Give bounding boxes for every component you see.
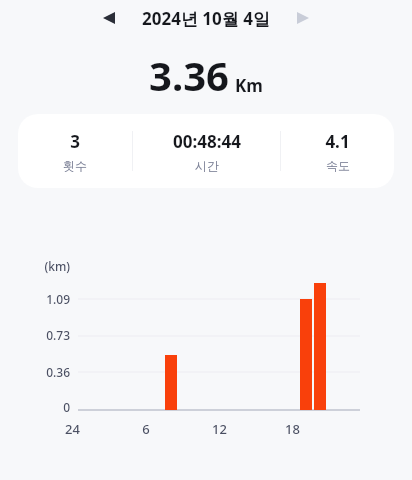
staticText: 18 (285, 420, 300, 438)
button[interactable]: Next day (288, 3, 318, 33)
staticText: 3 (70, 130, 80, 153)
staticText: 속도 (326, 158, 350, 173)
button[interactable]: 3 (18, 114, 394, 188)
staticText: 1.09 (46, 291, 70, 307)
staticText: 0.73 (46, 327, 70, 343)
staticText: 6 (142, 420, 150, 438)
staticText: 0.36 (46, 364, 70, 380)
staticText: (km) (44, 258, 70, 274)
button[interactable]: Previous day (94, 3, 124, 33)
staticText: 4.1 (325, 130, 350, 153)
staticText: 2024년 10월 4일 (142, 7, 270, 30)
staticText: 12 (212, 420, 227, 438)
staticText: 24 (65, 420, 80, 438)
staticText: Km (235, 74, 263, 97)
staticText: 횟수 (63, 158, 87, 173)
staticText: 시간 (195, 158, 219, 173)
staticText: 00:48:44 (173, 130, 241, 153)
staticText: 0 (63, 399, 70, 415)
staticText: 3.36 (149, 48, 229, 102)
